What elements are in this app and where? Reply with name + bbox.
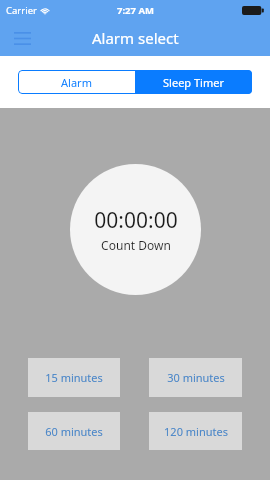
staticText: Alarm select [92, 28, 179, 48]
staticText: Count Down [101, 237, 171, 253]
button[interactable]: Menu [0, 20, 44, 56]
button[interactable]: Sleep Timer [135, 70, 252, 94]
staticText: 00:00:00 [94, 206, 178, 235]
button[interactable]: 120 minutes [149, 412, 242, 450]
button[interactable]: 60 minutes [28, 412, 120, 450]
staticText: Carrier [6, 4, 37, 17]
button[interactable]: 30 minutes [149, 358, 242, 397]
staticText: 15 minutes [45, 370, 103, 385]
staticText: Alarm [61, 75, 92, 90]
button[interactable]: 00:00:00 [70, 164, 201, 295]
staticText: 60 minutes [45, 424, 103, 439]
staticText: Sleep Timer [163, 75, 224, 90]
staticText: 30 minutes [167, 370, 225, 385]
button[interactable]: Alarm [18, 70, 135, 94]
staticText: 120 minutes [164, 424, 228, 439]
button[interactable]: 15 minutes [28, 358, 120, 397]
staticText: 7:27 AM [117, 4, 154, 17]
